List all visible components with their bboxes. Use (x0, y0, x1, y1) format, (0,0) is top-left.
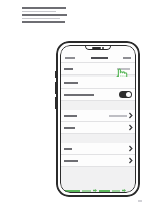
button[interactable] (60, 110, 136, 122)
other: Tap here (115, 69, 128, 83)
button[interactable] (60, 122, 136, 134)
button[interactable] (60, 77, 136, 89)
button[interactable]: Toggle (60, 89, 136, 101)
other: Toggle (119, 91, 132, 98)
button[interactable] (60, 143, 136, 155)
button[interactable] (60, 63, 136, 75)
button[interactable]: Done (122, 56, 132, 60)
button[interactable]: Back (64, 56, 76, 60)
button[interactable] (90, 56, 109, 60)
button[interactable] (60, 155, 136, 167)
